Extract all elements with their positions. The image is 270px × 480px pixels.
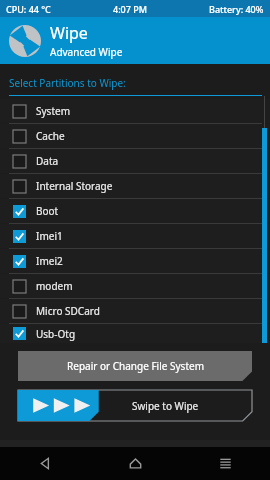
staticText: Swipe to Wipe — [132, 399, 199, 413]
button[interactable]: Usb-Otg — [0, 324, 270, 343]
button[interactable]: Cache — [0, 124, 270, 148]
button[interactable]: Recents — [180, 447, 270, 480]
staticText: Imei2 — [36, 254, 63, 268]
button[interactable]: Back — [0, 447, 90, 480]
staticText: Internal Storage — [36, 179, 113, 193]
button[interactable]: Repair or Change File System — [18, 351, 252, 381]
button[interactable]: Boot — [0, 199, 270, 223]
button[interactable]: Swipe to Wipe — [18, 390, 252, 421]
button[interactable]: Internal Storage — [0, 174, 270, 198]
staticText: Boot — [36, 204, 59, 218]
staticText: Micro SDCard — [36, 304, 100, 318]
staticText: Wipe — [50, 22, 88, 44]
button[interactable]: Imei1 — [0, 224, 270, 248]
staticText: Data — [36, 154, 59, 168]
staticText: CPU: 44 °C — [6, 3, 51, 15]
button[interactable]: Micro SDCard — [0, 299, 270, 323]
button[interactable]: Imei2 — [0, 249, 270, 273]
button[interactable]: modem — [0, 274, 270, 298]
staticText: Battery: 40% — [209, 3, 264, 15]
other: Wipe — [9, 25, 41, 57]
staticText: System — [36, 104, 70, 118]
staticText: Advanced Wipe — [50, 45, 123, 59]
staticText: Repair or Change File System — [67, 359, 204, 373]
staticText: 4:07 PM — [113, 3, 147, 15]
button[interactable]: Home — [90, 447, 180, 480]
staticText: Select Partitions to Wipe: — [9, 76, 126, 90]
button[interactable]: System — [0, 99, 270, 123]
staticText: modem — [36, 279, 73, 293]
staticText: Usb-Otg — [36, 327, 76, 341]
button[interactable]: Wipe — [0, 17, 270, 64]
staticText: Imei1 — [36, 229, 63, 243]
staticText: Cache — [36, 129, 65, 143]
button[interactable]: Data — [0, 149, 270, 173]
